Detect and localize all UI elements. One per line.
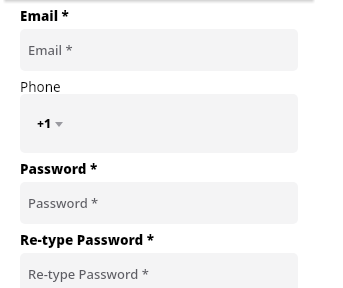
button[interactable]: Password * (20, 182, 298, 224)
staticText: Password * (28, 194, 99, 212)
staticText: Re-type Password * (20, 231, 155, 249)
staticText: Email * (20, 7, 69, 25)
button[interactable]: +1 (20, 94, 298, 153)
staticText: Phone (20, 78, 61, 96)
staticText: Email * (28, 41, 73, 59)
staticText: Password * (20, 160, 98, 178)
button[interactable]: Re-type Password * (20, 253, 298, 288)
staticText: +1 (37, 115, 52, 131)
button[interactable]: Email * (20, 29, 298, 71)
staticText: Re-type Password * (28, 265, 149, 283)
